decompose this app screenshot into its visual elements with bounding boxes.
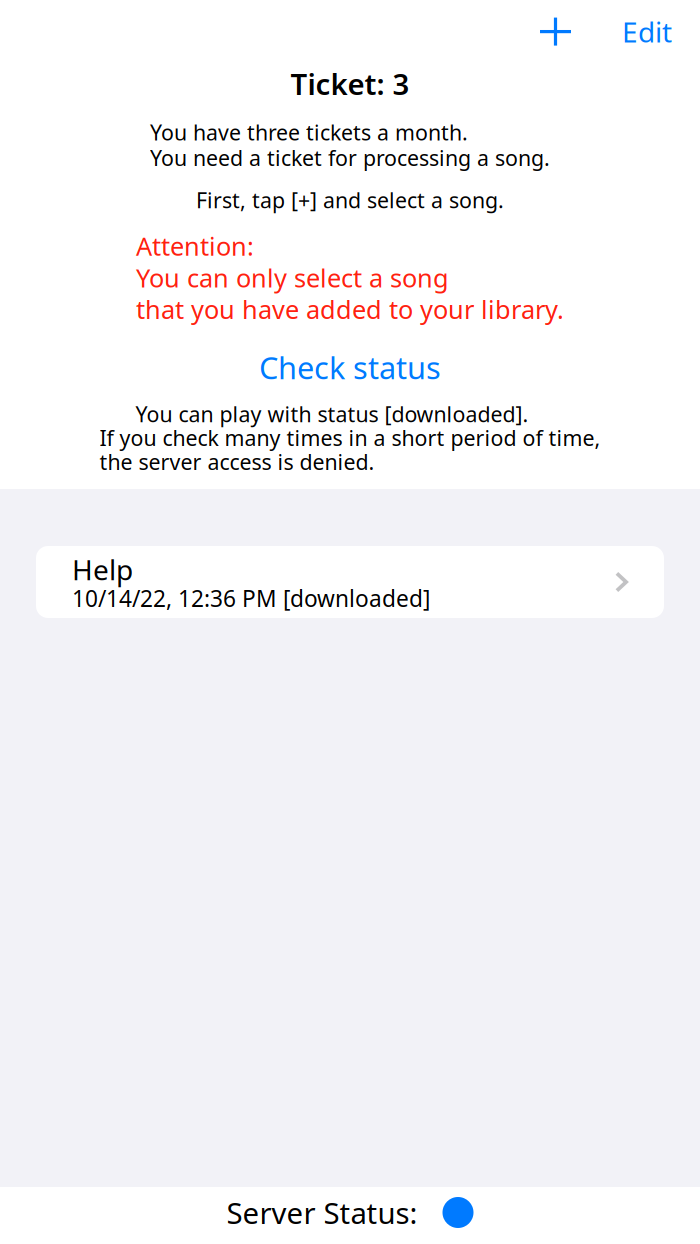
staticText: Ticket: 3 [290,64,409,103]
staticText: First, tap [+] and select a song. [196,186,504,214]
button[interactable]: Check status [259,347,441,388]
button[interactable]: Help [36,546,664,618]
staticText: Attention: You can only select a song th… [136,229,564,326]
button[interactable]: Add song [528,8,583,56]
staticText: You have three tickets a month. You need… [150,118,550,172]
staticText: Edit [622,13,672,50]
button[interactable]: Edit [614,7,680,56]
staticText: Server Status: [226,1193,417,1232]
staticText: Check status [259,347,441,388]
staticText: You can play with status [downloaded]. I… [99,400,600,476]
staticText: 10/14/22, 12:36 PM [downloaded] [72,583,430,613]
staticText: Help [72,551,133,588]
